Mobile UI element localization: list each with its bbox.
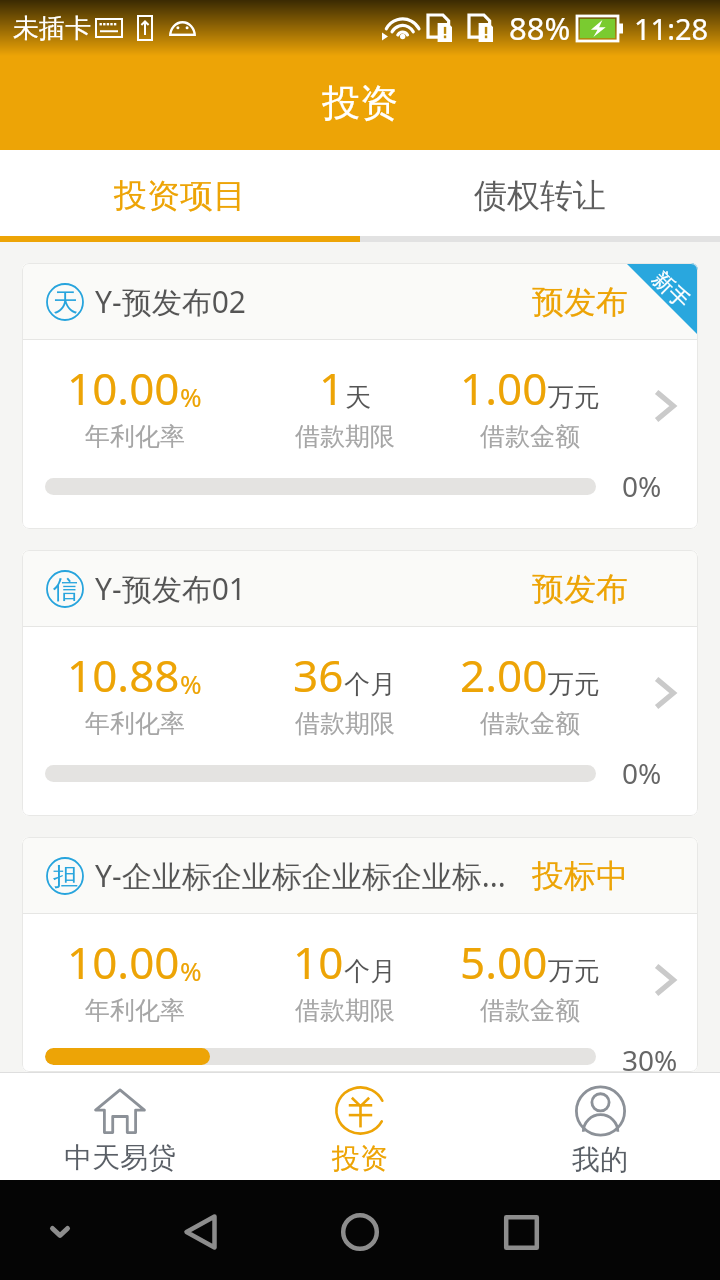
staticText: 投资 <box>322 79 398 127</box>
staticText: 10 <box>293 932 344 992</box>
staticText: 我的 <box>572 1142 628 1177</box>
staticText: 担 <box>53 861 78 892</box>
button[interactable]: 担 <box>22 837 698 1072</box>
staticText: Y-预发布02 <box>95 281 246 322</box>
staticText: 个月 <box>344 668 396 701</box>
staticText: % <box>180 379 202 414</box>
other: 详情 <box>644 384 688 428</box>
staticText: 30% <box>622 1041 678 1072</box>
staticText: 10.88 <box>67 645 180 705</box>
staticText: 中天易贷 <box>64 1140 176 1175</box>
button[interactable]: 投资 <box>240 1073 480 1180</box>
staticText: 年利化率 <box>85 708 185 739</box>
staticText: 信 <box>53 574 78 605</box>
other: 隐藏 <box>28 1200 92 1264</box>
staticText: 万元 <box>548 668 600 701</box>
other: 主页 <box>328 1200 392 1264</box>
staticText: 0% <box>622 467 662 505</box>
staticText: 未插卡 <box>13 12 91 45</box>
button[interactable]: 信 <box>22 550 698 816</box>
other: 返回 <box>168 1200 232 1264</box>
staticText: Y-企业标企业标企业标企业标... <box>95 855 506 896</box>
staticText: 债权转让 <box>474 175 606 217</box>
staticText: 1 <box>319 358 345 418</box>
button[interactable]: 天 <box>22 263 698 529</box>
staticText: Y-预发布01 <box>95 568 246 609</box>
other: 详情 <box>644 958 688 1002</box>
staticText: 个月 <box>344 955 396 988</box>
staticText: 万元 <box>548 381 600 414</box>
staticText: 年利化率 <box>85 995 185 1026</box>
staticText: 新手 <box>647 266 695 314</box>
other: 详情 <box>644 671 688 715</box>
staticText: 投资 <box>332 1141 388 1176</box>
staticText: 投资项目 <box>114 175 246 217</box>
button[interactable]: 债权转让 <box>360 150 720 242</box>
staticText: 天 <box>345 381 371 414</box>
staticText: 10.00 <box>67 358 180 418</box>
button[interactable]: 我的 <box>480 1073 720 1180</box>
staticText: 5.00 <box>460 932 548 992</box>
staticText: 借款期限 <box>295 708 395 739</box>
staticText: 1.00 <box>460 358 548 418</box>
button[interactable]: 中天易贷 <box>0 1073 240 1180</box>
button[interactable]: 投资项目 <box>0 150 360 242</box>
staticText: 借款金额 <box>480 421 580 452</box>
staticText: 借款金额 <box>480 708 580 739</box>
staticText: 天 <box>53 287 78 318</box>
staticText: 投标中 <box>532 856 628 896</box>
staticText: 预发布 <box>532 569 628 609</box>
staticText: 借款期限 <box>295 421 395 452</box>
staticText: % <box>180 666 202 701</box>
staticText: 11:28 <box>634 9 709 48</box>
staticText: 预发布 <box>532 282 628 322</box>
staticText: 借款期限 <box>295 995 395 1026</box>
staticText: 88% <box>509 7 571 49</box>
staticText: 10.00 <box>67 932 180 992</box>
staticText: 借款金额 <box>480 995 580 1026</box>
staticText: 36 <box>293 645 344 705</box>
staticText: 0% <box>622 754 662 792</box>
other: 最近应用 <box>489 1200 553 1264</box>
staticText: 万元 <box>548 955 600 988</box>
staticText: 年利化率 <box>85 421 185 452</box>
staticText: 2.00 <box>460 645 548 705</box>
staticText: % <box>180 953 202 988</box>
